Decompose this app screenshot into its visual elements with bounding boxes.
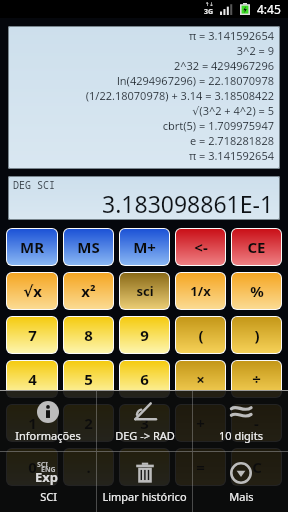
staticText: MS (77, 237, 100, 257)
staticText: Exp (35, 468, 59, 486)
staticText: C (252, 457, 262, 477)
button[interactable]: SCI notation (0, 452, 96, 512)
staticText: ↑↓ (205, 1, 214, 7)
staticText: MR (20, 237, 44, 257)
button[interactable]: MS (64, 229, 113, 265)
staticText: ÷ (252, 369, 261, 389)
button[interactable]: - (232, 405, 281, 441)
staticText: ( (198, 325, 204, 345)
button[interactable]: DEG to RAD (97, 391, 192, 451)
staticText: (1/22.18070978) + 3.14 = 3.18508422 (85, 88, 274, 103)
staticText: CE (247, 237, 266, 257)
staticText: 3^2 = 9 (236, 43, 274, 58)
staticText: 9 (140, 325, 149, 345)
button[interactable]: 3 (120, 405, 169, 441)
button[interactable]: x² (64, 273, 113, 309)
button[interactable]: MR (7, 229, 57, 265)
staticText: = (196, 457, 205, 477)
button[interactable]: + (176, 405, 225, 441)
staticText: 3G (204, 7, 214, 17)
staticText: 2 (84, 413, 93, 433)
staticText: x² (81, 281, 96, 301)
staticText: . (86, 457, 91, 477)
staticText: SCI (37, 460, 49, 470)
staticText: % (250, 281, 264, 301)
staticText: 2^32 = 4294967296 (173, 58, 274, 73)
button[interactable]: 5 (64, 361, 113, 397)
button[interactable]: 8 (64, 317, 113, 353)
staticText: E (140, 457, 149, 477)
button[interactable]: = (176, 449, 225, 485)
staticText: Informações (15, 428, 81, 443)
staticText: 3 (140, 413, 149, 433)
staticText: π = 3.141592654 (188, 148, 274, 163)
button[interactable]: 1 (7, 405, 57, 441)
staticText: √(3^2 + 4^2) = 5 (192, 103, 274, 118)
button[interactable]: 9 (120, 317, 169, 353)
staticText: DEG SCI (13, 178, 55, 192)
button[interactable]: . (64, 449, 113, 485)
button[interactable]: ( (176, 317, 225, 353)
button[interactable]: 0 (7, 449, 57, 485)
staticText: cbrt(5) = 1.709975947 (162, 118, 274, 133)
staticText: 4:45 (257, 1, 281, 17)
button[interactable]: % (232, 273, 281, 309)
staticText: 5 (84, 369, 93, 389)
staticText: - (254, 413, 259, 433)
staticText: e = 2.718281828 (189, 133, 274, 148)
button[interactable]: 10 digits (193, 391, 288, 451)
button[interactable]: 2 (64, 405, 113, 441)
staticText: + (196, 413, 205, 433)
staticText: Limpar histórico (102, 489, 187, 504)
button[interactable]: C (232, 449, 281, 485)
staticText: Mais (229, 489, 254, 504)
button[interactable]: ÷ (232, 361, 281, 397)
button[interactable]: sci (120, 273, 169, 309)
staticText: <- (194, 237, 208, 257)
button[interactable]: 7 (7, 317, 57, 353)
staticText: × (196, 369, 205, 389)
staticText: 1/x (190, 282, 211, 300)
button[interactable]: 6 (120, 361, 169, 397)
button[interactable]: Limpar histórico (97, 452, 192, 512)
staticText: 8 (84, 325, 93, 345)
staticText: 7 (28, 325, 37, 345)
button[interactable]: 1/x (176, 273, 225, 309)
button[interactable]: CE (232, 229, 281, 265)
staticText: sci (136, 282, 154, 300)
staticText: M+ (133, 237, 156, 257)
staticText: ) (254, 325, 260, 345)
button[interactable]: ) (232, 317, 281, 353)
button[interactable]: DEG SCI (8, 176, 280, 220)
staticText: 10 digits (219, 428, 263, 443)
staticText: DEG -> RAD (115, 428, 175, 443)
staticText: 1 (28, 413, 37, 433)
button[interactable]: E (120, 449, 169, 485)
staticText: 3.183098861E-1 (102, 188, 274, 219)
button[interactable]: M+ (120, 229, 169, 265)
button[interactable]: × (176, 361, 225, 397)
staticText: √x (23, 281, 42, 301)
staticText: 4 (28, 369, 37, 389)
staticText: 6 (140, 369, 149, 389)
button[interactable]: <- (176, 229, 225, 265)
button[interactable]: √x (7, 273, 57, 309)
button[interactable]: 4 (7, 361, 57, 397)
button[interactable]: Informações (0, 391, 96, 451)
staticText: ln(4294967296) = 22.18070978 (116, 73, 274, 88)
staticText: 0 (28, 457, 37, 477)
staticText: ENG (41, 465, 56, 475)
button[interactable]: Mais (193, 452, 288, 512)
staticText: π = 3.141592654 (188, 28, 274, 43)
staticText: SCI (40, 489, 57, 504)
